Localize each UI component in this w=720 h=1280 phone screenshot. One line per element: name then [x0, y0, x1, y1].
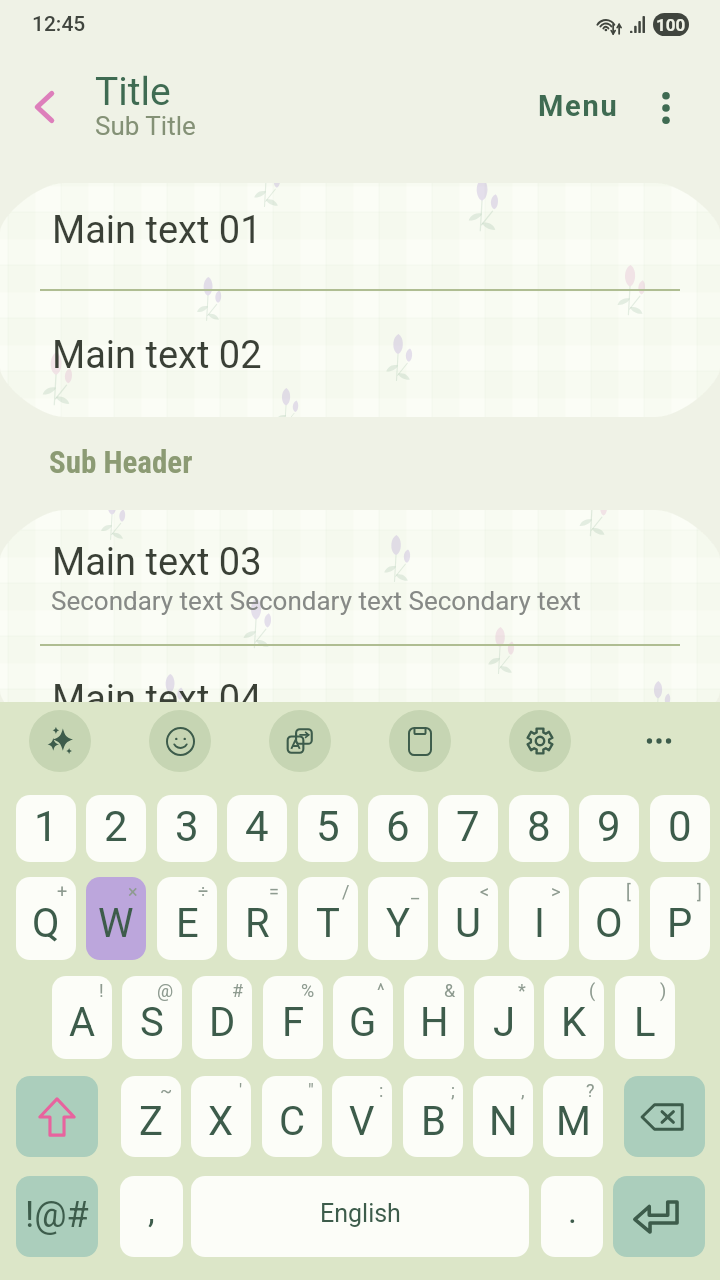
staticText: Secondary text Secondary text Secondary …	[51, 586, 581, 616]
button[interactable]: A	[52, 976, 112, 1059]
button[interactable]: J	[474, 976, 534, 1059]
button[interactable]: 2	[86, 795, 146, 862]
button[interactable]: N	[473, 1076, 533, 1157]
button[interactable]: T	[298, 877, 358, 960]
button[interactable]: E	[157, 877, 217, 960]
staticText: ;	[451, 1080, 455, 1101]
button[interactable]: W	[86, 877, 146, 960]
staticText: Sub Header	[49, 444, 193, 480]
staticText: 4	[245, 802, 269, 851]
staticText: ~	[160, 1080, 173, 1101]
button[interactable]: Q	[16, 877, 76, 960]
button[interactable]: Menu	[526, 79, 631, 133]
button[interactable]: Z	[121, 1076, 181, 1157]
staticText: F	[282, 999, 305, 1046]
button[interactable]: P	[650, 877, 710, 960]
staticText: 100	[656, 15, 686, 35]
button[interactable]: English	[191, 1176, 529, 1257]
button[interactable]: B	[403, 1076, 463, 1157]
button[interactable]: Y	[368, 877, 428, 960]
staticText: 7	[456, 802, 480, 851]
button[interactable]: Translate	[269, 710, 331, 772]
staticText: W	[98, 900, 134, 947]
staticText: English	[320, 1199, 401, 1228]
button[interactable]: 5	[298, 795, 358, 862]
staticText: X	[208, 1098, 234, 1145]
button[interactable]: ,	[120, 1176, 183, 1257]
staticText: 6	[386, 802, 410, 851]
button[interactable]: Shift	[16, 1076, 98, 1157]
button[interactable]: Emoji	[149, 710, 211, 772]
button[interactable]: V	[332, 1076, 392, 1157]
staticText: 12:45	[32, 12, 86, 37]
staticText: Main text 02	[52, 333, 262, 378]
button[interactable]: H	[404, 976, 464, 1059]
button[interactable]: F	[263, 976, 323, 1059]
button[interactable]: D	[192, 976, 252, 1059]
button[interactable]: Main text 02	[0, 290, 720, 417]
staticText: A	[69, 999, 96, 1046]
button[interactable]: I	[509, 877, 569, 960]
staticText: &	[444, 980, 456, 1001]
staticText: Main text 03	[52, 540, 262, 585]
button[interactable]: 1	[16, 795, 76, 862]
staticText: C	[279, 1098, 306, 1145]
button[interactable]: 3	[157, 795, 217, 862]
button[interactable]: U	[438, 877, 498, 960]
staticText: D	[209, 999, 236, 1046]
button[interactable]: M	[543, 1076, 603, 1157]
staticText: "	[308, 1080, 314, 1101]
button[interactable]: O	[579, 877, 639, 960]
staticText: N	[489, 1098, 518, 1145]
staticText: R	[245, 900, 270, 947]
button[interactable]: Backspace	[624, 1076, 705, 1157]
staticText: ÷	[198, 881, 209, 902]
staticText: Sub Title	[95, 111, 196, 141]
button[interactable]: .	[541, 1176, 603, 1257]
button[interactable]: G	[333, 976, 393, 1059]
button[interactable]: 8	[509, 795, 569, 862]
button[interactable]: Main text 04	[0, 645, 720, 740]
button[interactable]: 9	[579, 795, 639, 862]
button[interactable]: R	[227, 877, 287, 960]
staticText: 9	[597, 802, 621, 851]
staticText: Z	[139, 1098, 163, 1145]
button[interactable]: 7	[438, 795, 498, 862]
staticText: E	[176, 900, 199, 947]
staticText: )	[660, 980, 667, 1001]
staticText: J	[493, 999, 516, 1046]
button[interactable]: S	[122, 976, 182, 1059]
staticText: Main text 04	[52, 677, 262, 722]
button[interactable]: 0	[650, 795, 710, 862]
staticText: (	[589, 980, 596, 1001]
staticText: Q	[32, 900, 60, 947]
staticText: O	[595, 900, 623, 947]
button[interactable]: C	[262, 1076, 322, 1157]
button[interactable]: L	[615, 976, 675, 1059]
button[interactable]: More options	[648, 90, 684, 126]
button[interactable]: Magic	[29, 710, 91, 772]
staticText: @	[157, 980, 174, 1001]
staticText: ,	[148, 1191, 155, 1231]
button[interactable]: 6	[368, 795, 428, 862]
button[interactable]: Back	[21, 83, 69, 131]
staticText: L	[634, 999, 656, 1046]
staticText: 2	[104, 802, 128, 851]
button[interactable]: 4	[227, 795, 287, 862]
staticText: Menu	[538, 89, 619, 123]
button[interactable]: !@#	[16, 1176, 98, 1257]
staticText: 0	[668, 802, 692, 851]
button[interactable]: X	[191, 1076, 251, 1157]
staticText: #	[232, 980, 244, 1001]
button[interactable]: More	[628, 710, 690, 772]
button[interactable]: Main text 03	[0, 510, 720, 645]
staticText: Main text 01	[52, 208, 262, 253]
button[interactable]: Enter	[613, 1176, 705, 1257]
button[interactable]: Clipboard	[389, 710, 451, 772]
button[interactable]: Main text 01	[0, 183, 720, 290]
staticText: ×	[128, 881, 138, 902]
button[interactable]: K	[544, 976, 604, 1059]
staticText: 8	[527, 802, 551, 851]
button[interactable]: Settings	[509, 710, 571, 772]
staticText: *	[518, 980, 526, 1001]
